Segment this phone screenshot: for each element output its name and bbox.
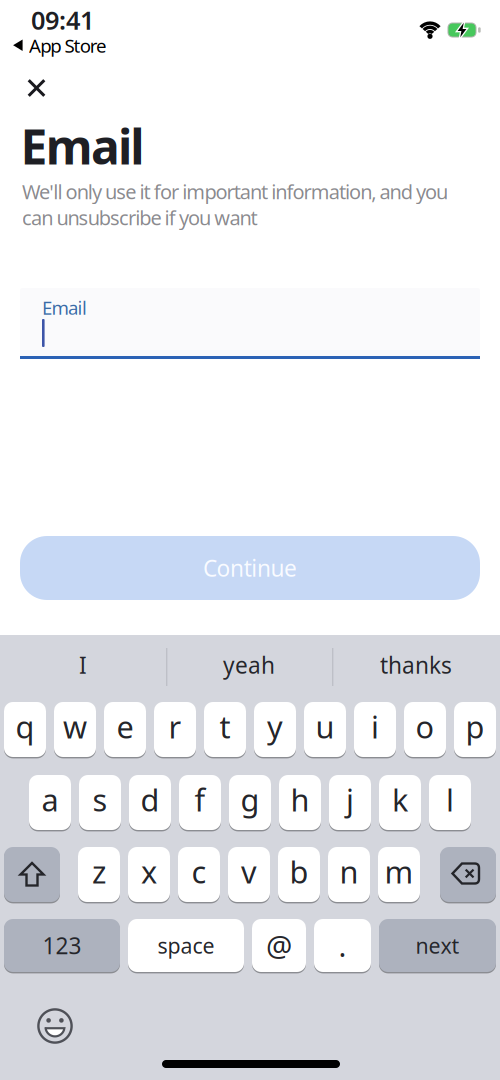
button[interactable]: [440, 846, 496, 903]
button[interactable]: l: [429, 774, 471, 831]
button[interactable]: @: [252, 918, 306, 973]
button[interactable]: 123: [4, 918, 120, 973]
button[interactable]: thanks: [356, 645, 476, 685]
button[interactable]: App Store: [13, 33, 107, 58]
button[interactable]: yeah: [189, 645, 309, 685]
button[interactable]: f: [179, 774, 221, 831]
staticText: t: [219, 706, 230, 747]
button[interactable]: s: [79, 774, 121, 831]
staticText: Email: [42, 295, 87, 320]
button[interactable]: d: [129, 774, 171, 831]
staticText: q: [15, 706, 34, 747]
staticText: d: [140, 779, 159, 820]
staticText: Email: [20, 114, 144, 178]
button[interactable]: u: [304, 701, 346, 758]
staticText: o: [415, 706, 434, 747]
button[interactable]: t: [204, 701, 246, 758]
staticText: j: [346, 779, 354, 820]
staticText: f: [194, 779, 205, 820]
button[interactable]: q: [4, 701, 46, 758]
button[interactable]: .: [314, 918, 371, 973]
staticText: thanks: [380, 650, 452, 680]
staticText: i: [371, 706, 379, 747]
button[interactable]: b: [278, 846, 320, 903]
button[interactable]: a: [29, 774, 71, 831]
staticText: next: [415, 931, 459, 960]
staticText: yeah: [223, 650, 275, 680]
button[interactable]: v: [228, 846, 270, 903]
button[interactable]: w: [54, 701, 96, 758]
button[interactable]: next: [379, 918, 496, 973]
button[interactable]: space: [128, 918, 244, 973]
button[interactable]: o: [404, 701, 446, 758]
button[interactable]: j: [329, 774, 371, 831]
staticText: u: [315, 706, 334, 747]
staticText: w: [63, 706, 87, 747]
staticText: x: [141, 851, 157, 892]
button[interactable]: e: [104, 701, 146, 758]
button[interactable]: i: [354, 701, 396, 758]
staticText: m: [384, 851, 413, 892]
staticText: @: [266, 926, 292, 965]
staticText: h: [290, 779, 309, 820]
button[interactable]: [14, 66, 58, 110]
staticText: r: [168, 706, 181, 747]
staticText: b: [289, 851, 308, 892]
staticText: space: [157, 931, 214, 960]
button[interactable]: h: [279, 774, 321, 831]
button[interactable]: n: [328, 846, 370, 903]
staticText: g: [240, 779, 259, 820]
staticText: s: [92, 779, 107, 820]
button[interactable]: p: [454, 701, 496, 758]
staticText: l: [446, 779, 454, 820]
button[interactable]: x: [128, 846, 170, 903]
button[interactable]: [4, 846, 60, 903]
button[interactable]: g: [229, 774, 271, 831]
staticText: We'll only use it for important informat…: [22, 178, 448, 205]
button[interactable]: Continue: [20, 536, 480, 600]
button[interactable]: y: [254, 701, 296, 758]
button[interactable]: r: [154, 701, 196, 758]
staticText: can unsubscribe if you want: [22, 204, 258, 231]
button[interactable]: c: [178, 846, 220, 903]
button[interactable]: Email: [20, 288, 480, 359]
staticText: k: [392, 779, 408, 820]
staticText: v: [241, 851, 257, 892]
button[interactable]: m: [378, 846, 420, 903]
staticText: z: [92, 851, 106, 892]
staticText: 123: [42, 930, 81, 960]
staticText: e: [116, 706, 133, 747]
button[interactable]: k: [379, 774, 421, 831]
staticText: .: [338, 926, 346, 965]
staticText: c: [191, 851, 206, 892]
staticText: a: [41, 779, 58, 820]
button[interactable]: z: [78, 846, 120, 903]
button[interactable]: I: [33, 645, 133, 685]
staticText: n: [339, 851, 358, 892]
staticText: Continue: [203, 553, 297, 583]
staticText: 09:41: [31, 3, 94, 37]
staticText: App Store: [29, 33, 107, 58]
button[interactable]: [33, 1004, 77, 1048]
staticText: I: [79, 650, 87, 680]
staticText: y: [267, 706, 283, 747]
staticText: p: [465, 706, 484, 747]
